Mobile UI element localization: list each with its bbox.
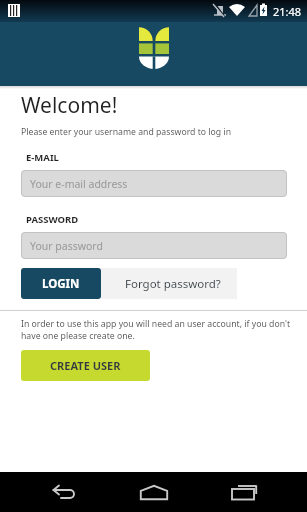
button[interactable]: CREATE USER bbox=[21, 350, 150, 381]
button[interactable]: Your password bbox=[21, 232, 287, 259]
staticText: Forgot password? bbox=[125, 276, 221, 292]
staticText: PASSWORD bbox=[26, 213, 79, 226]
button[interactable] bbox=[109, 472, 199, 512]
staticText: Your password bbox=[30, 239, 103, 253]
staticText: Please enter your username and password … bbox=[21, 126, 232, 138]
staticText: In order to use this app you will need a… bbox=[21, 318, 291, 342]
button[interactable]: Your e-mail address bbox=[21, 170, 287, 197]
staticText: Welcome! bbox=[21, 91, 118, 120]
button[interactable]: Forgot password? bbox=[101, 268, 237, 299]
button[interactable]: LOGIN bbox=[21, 268, 101, 299]
button[interactable] bbox=[199, 472, 289, 512]
staticText: Your e-mail address bbox=[30, 177, 128, 191]
staticText: CREATE USER bbox=[50, 358, 121, 373]
staticText: E-MAIL bbox=[26, 151, 59, 164]
staticText: LOGIN bbox=[42, 276, 80, 292]
staticText: 21:48 bbox=[273, 4, 302, 19]
button[interactable] bbox=[18, 472, 109, 512]
